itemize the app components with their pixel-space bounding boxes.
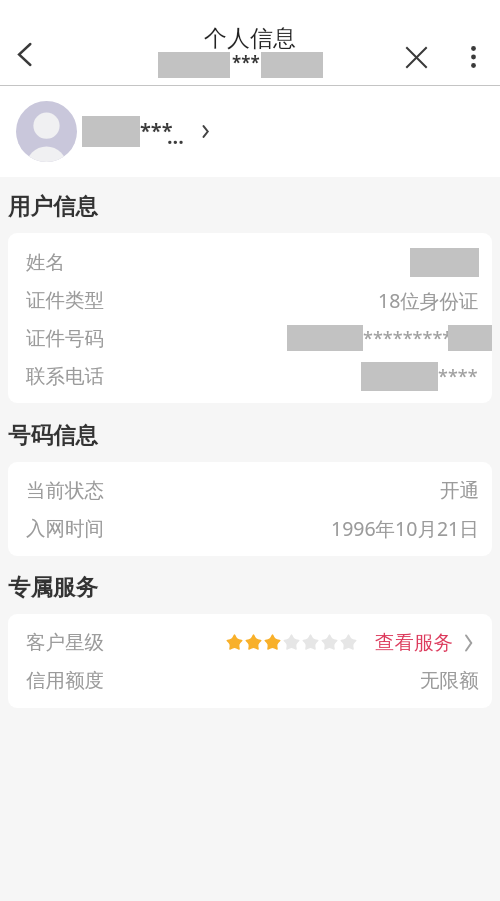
staticText: **** [438, 364, 477, 389]
staticText: 证件类型 [26, 288, 104, 313]
button[interactable]: 证件号码 [8, 319, 492, 357]
staticText: ********** [363, 326, 448, 351]
button[interactable]: *** [0, 86, 500, 177]
staticText: *** [232, 51, 260, 74]
button[interactable]: More options [451, 35, 495, 79]
staticText: 个人信息 [204, 24, 296, 53]
button[interactable]: 入网时间 [8, 509, 492, 547]
staticText: 姓名 [26, 250, 65, 275]
button[interactable]: 联系电话 [8, 357, 492, 395]
staticText: ... [167, 123, 184, 150]
button[interactable]: 查看服务 [375, 630, 474, 655]
staticText: 专属服务 [8, 573, 98, 601]
staticText: 1996年10月21日 [331, 515, 479, 542]
staticText: 证件号码 [26, 326, 104, 351]
staticText: 客户星级 [26, 630, 104, 655]
staticText: 开通 [440, 478, 479, 503]
staticText: *** [140, 117, 173, 144]
staticText: 无限额 [420, 668, 479, 693]
staticText: 用户信息 [8, 192, 98, 220]
staticText: 入网时间 [26, 516, 104, 541]
button[interactable]: 证件类型 [8, 281, 492, 319]
staticText: 18位身份证 [378, 287, 479, 314]
button[interactable]: 当前状态 [8, 471, 492, 509]
button[interactable]: 信用额度 [8, 661, 492, 699]
staticText: 当前状态 [26, 478, 104, 503]
staticText: 信用额度 [26, 668, 104, 693]
button[interactable]: Back [2, 32, 46, 76]
button[interactable]: Close [394, 35, 438, 79]
staticText: 号码信息 [8, 421, 98, 449]
button[interactable]: 姓名 [8, 243, 492, 281]
staticText: 查看服务 [375, 630, 453, 655]
staticText: 联系电话 [26, 364, 104, 389]
